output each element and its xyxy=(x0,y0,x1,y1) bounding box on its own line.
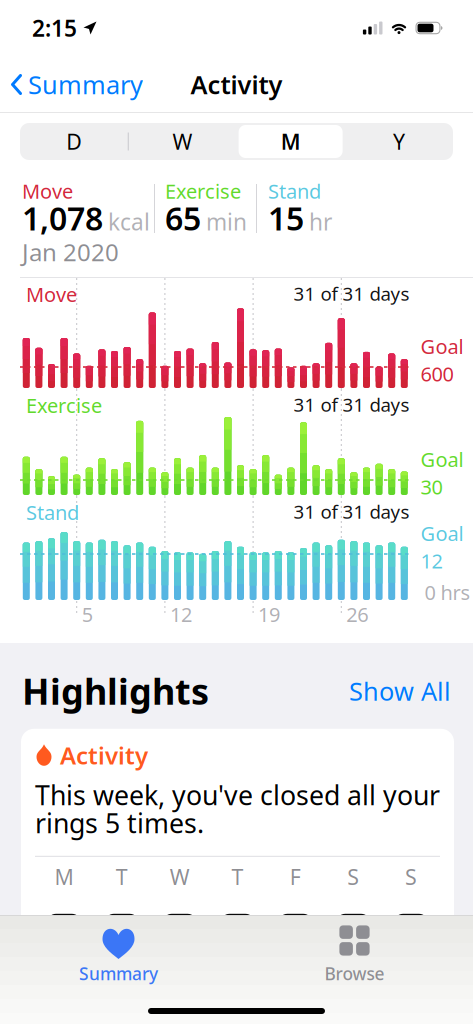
staticText: 26 xyxy=(346,601,368,628)
staticText: 31 of 31 days xyxy=(294,499,410,524)
staticText: M xyxy=(281,127,301,156)
staticText: Stand xyxy=(26,499,79,526)
staticText: min xyxy=(206,207,247,237)
staticText: kcal xyxy=(108,207,150,237)
button[interactable]: Summary xyxy=(0,60,143,109)
button[interactable]: Browse xyxy=(236,915,472,982)
staticText: Summary xyxy=(79,962,158,985)
staticText: 19 xyxy=(258,601,280,628)
staticText: 5 xyxy=(82,601,93,628)
staticText: Move xyxy=(22,178,73,204)
staticText: Summary xyxy=(28,68,143,101)
staticText: M xyxy=(54,863,73,891)
staticText: 2:15 xyxy=(32,13,77,43)
button[interactable]: M xyxy=(236,123,345,160)
staticText: Browse xyxy=(324,962,384,985)
staticText: 12 xyxy=(170,601,192,628)
staticText: Stand xyxy=(268,178,321,204)
staticText: Goal xyxy=(421,333,464,359)
staticText: 65 xyxy=(165,197,201,239)
staticText: T xyxy=(231,863,243,891)
staticText: Move xyxy=(26,281,77,308)
button[interactable]: Y xyxy=(345,123,453,160)
staticText: 15 xyxy=(268,197,304,239)
button[interactable]: W xyxy=(128,123,236,160)
staticText: hr xyxy=(309,207,332,237)
staticText: 1,078 xyxy=(22,197,103,239)
button[interactable]: D xyxy=(20,123,128,160)
staticText: W xyxy=(170,863,190,891)
staticText: 12 xyxy=(421,547,443,574)
staticText: rings 5 times. xyxy=(35,805,204,840)
staticText: Jan 2020 xyxy=(22,236,119,268)
staticText: Goal xyxy=(421,520,464,546)
staticText: Y xyxy=(393,127,405,156)
staticText: Exercise xyxy=(26,392,102,419)
staticText: 30 xyxy=(421,473,443,500)
staticText: This week, you've closed all your xyxy=(35,777,440,812)
staticText: 0 hrs xyxy=(425,579,471,606)
staticText: S xyxy=(405,863,417,891)
staticText: Exercise xyxy=(165,178,241,204)
staticText: Activity xyxy=(190,68,282,101)
staticText: 31 of 31 days xyxy=(294,392,410,417)
staticText: S xyxy=(347,863,359,891)
staticText: W xyxy=(172,127,192,156)
button[interactable]: Summary xyxy=(0,915,236,982)
staticText: T xyxy=(116,863,128,891)
staticText: Highlights xyxy=(22,667,209,715)
button[interactable]: Show All xyxy=(349,674,451,708)
staticText: 31 of 31 days xyxy=(294,281,410,306)
staticText: Show All xyxy=(349,674,451,708)
staticText: F xyxy=(290,863,301,891)
staticText: D xyxy=(66,127,82,156)
staticText: Activity xyxy=(60,739,148,771)
staticText: 600 xyxy=(421,360,454,387)
staticText: Goal xyxy=(421,446,464,472)
